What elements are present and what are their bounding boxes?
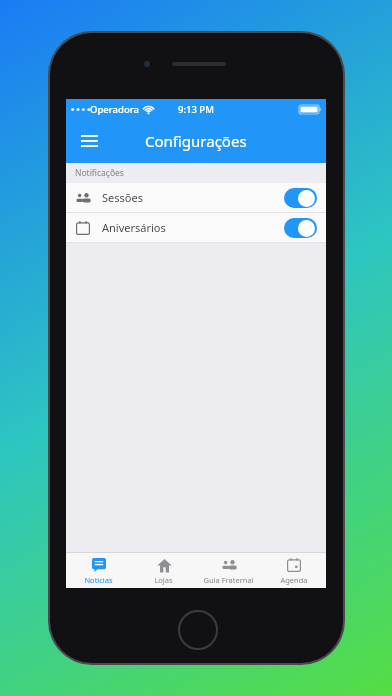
staticText: Configurações <box>145 131 247 151</box>
button[interactable]: Toggle <box>284 188 317 208</box>
button[interactable]: Toggle <box>284 218 317 238</box>
button[interactable]: Agenda <box>261 553 326 588</box>
button[interactable]: Notícias <box>66 553 131 588</box>
staticText: Aniversários <box>102 220 284 235</box>
button[interactable]: Guia Fraternal <box>196 553 261 588</box>
staticText: Notificações <box>75 167 124 179</box>
staticText: Sessões <box>102 190 284 205</box>
button[interactable]: Menu <box>72 124 106 158</box>
staticText: 9:13 PM <box>178 103 214 116</box>
button[interactable]: Lojas <box>131 553 196 588</box>
button[interactable]: Aniversários <box>66 213 326 242</box>
button[interactable]: Sessões <box>66 183 326 212</box>
staticText: Guia Fraternal <box>203 575 254 585</box>
staticText: Operadora <box>90 103 140 116</box>
staticText: Agenda <box>280 575 308 585</box>
staticText: Lojas <box>154 575 173 585</box>
staticText: Notícias <box>84 575 113 585</box>
